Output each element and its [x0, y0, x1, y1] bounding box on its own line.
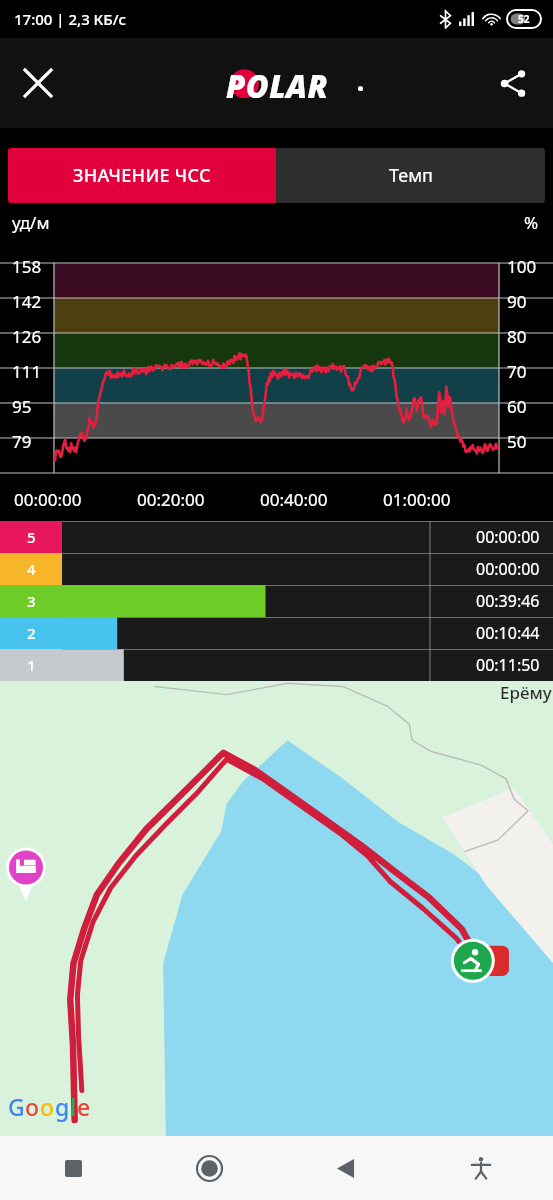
- staticText: 01:00:00: [383, 488, 451, 511]
- staticText: 4: [27, 559, 36, 579]
- staticText: 70: [507, 360, 553, 383]
- staticText: o: [40, 1091, 55, 1122]
- button[interactable]: 4: [0, 553, 553, 585]
- button[interactable]: Close: [10, 55, 66, 111]
- staticText: 2: [27, 623, 36, 643]
- staticText: 90: [507, 290, 553, 313]
- staticText: Темп: [389, 163, 433, 188]
- staticText: 80: [507, 325, 553, 348]
- staticText: G: [8, 1091, 25, 1122]
- button[interactable]: Share: [485, 55, 541, 111]
- button[interactable]: Home: [182, 1141, 236, 1195]
- button[interactable]: 2: [0, 617, 553, 649]
- button[interactable]: Back: [318, 1141, 372, 1195]
- staticText: 5: [27, 527, 36, 547]
- staticText: 158: [12, 255, 54, 278]
- button[interactable]: Route map: [0, 681, 553, 1136]
- button[interactable]: ЗНАЧЕНИЕ ЧСС: [8, 148, 276, 203]
- staticText: 00:10:44: [476, 622, 540, 644]
- staticText: g: [55, 1091, 70, 1122]
- staticText: 17:00 | 2,3 КБ/с: [14, 9, 126, 29]
- staticText: 52: [518, 12, 530, 26]
- staticText: 00:00:00: [476, 526, 540, 548]
- staticText: 95: [12, 395, 54, 418]
- staticText: 00:20:00: [137, 488, 205, 511]
- staticText: 00:40:00: [260, 488, 328, 511]
- staticText: 60: [507, 395, 553, 418]
- staticText: 00:39:46: [476, 590, 540, 612]
- staticText: 00:11:50: [476, 654, 540, 676]
- button[interactable]: Accessibility: [454, 1141, 508, 1195]
- button[interactable]: Темп: [276, 148, 545, 203]
- staticText: Ерёму: [500, 681, 552, 704]
- staticText: 00:00:00: [476, 558, 540, 580]
- staticText: уд/м: [12, 211, 50, 234]
- staticText: e: [77, 1091, 91, 1122]
- button[interactable]: Recents: [46, 1141, 100, 1195]
- button[interactable]: 5: [0, 521, 553, 553]
- staticText: 100: [507, 255, 553, 278]
- button[interactable]: 1: [0, 649, 553, 681]
- staticText: 111: [12, 360, 54, 383]
- staticText: 1: [27, 655, 36, 675]
- staticText: %: [524, 211, 539, 234]
- staticText: 142: [12, 290, 54, 313]
- staticText: o: [25, 1091, 40, 1122]
- staticText: 00:00:00: [14, 488, 82, 511]
- button[interactable]: 3: [0, 585, 553, 617]
- staticText: 3: [27, 591, 36, 611]
- staticText: 126: [12, 325, 54, 348]
- staticText: POLAR: [226, 65, 329, 101]
- staticText: ЗНАЧЕНИЕ ЧСС: [73, 163, 211, 188]
- staticText: .: [357, 65, 364, 98]
- staticText: l: [70, 1091, 77, 1122]
- staticText: 50: [507, 430, 553, 453]
- staticText: 79: [12, 430, 54, 453]
